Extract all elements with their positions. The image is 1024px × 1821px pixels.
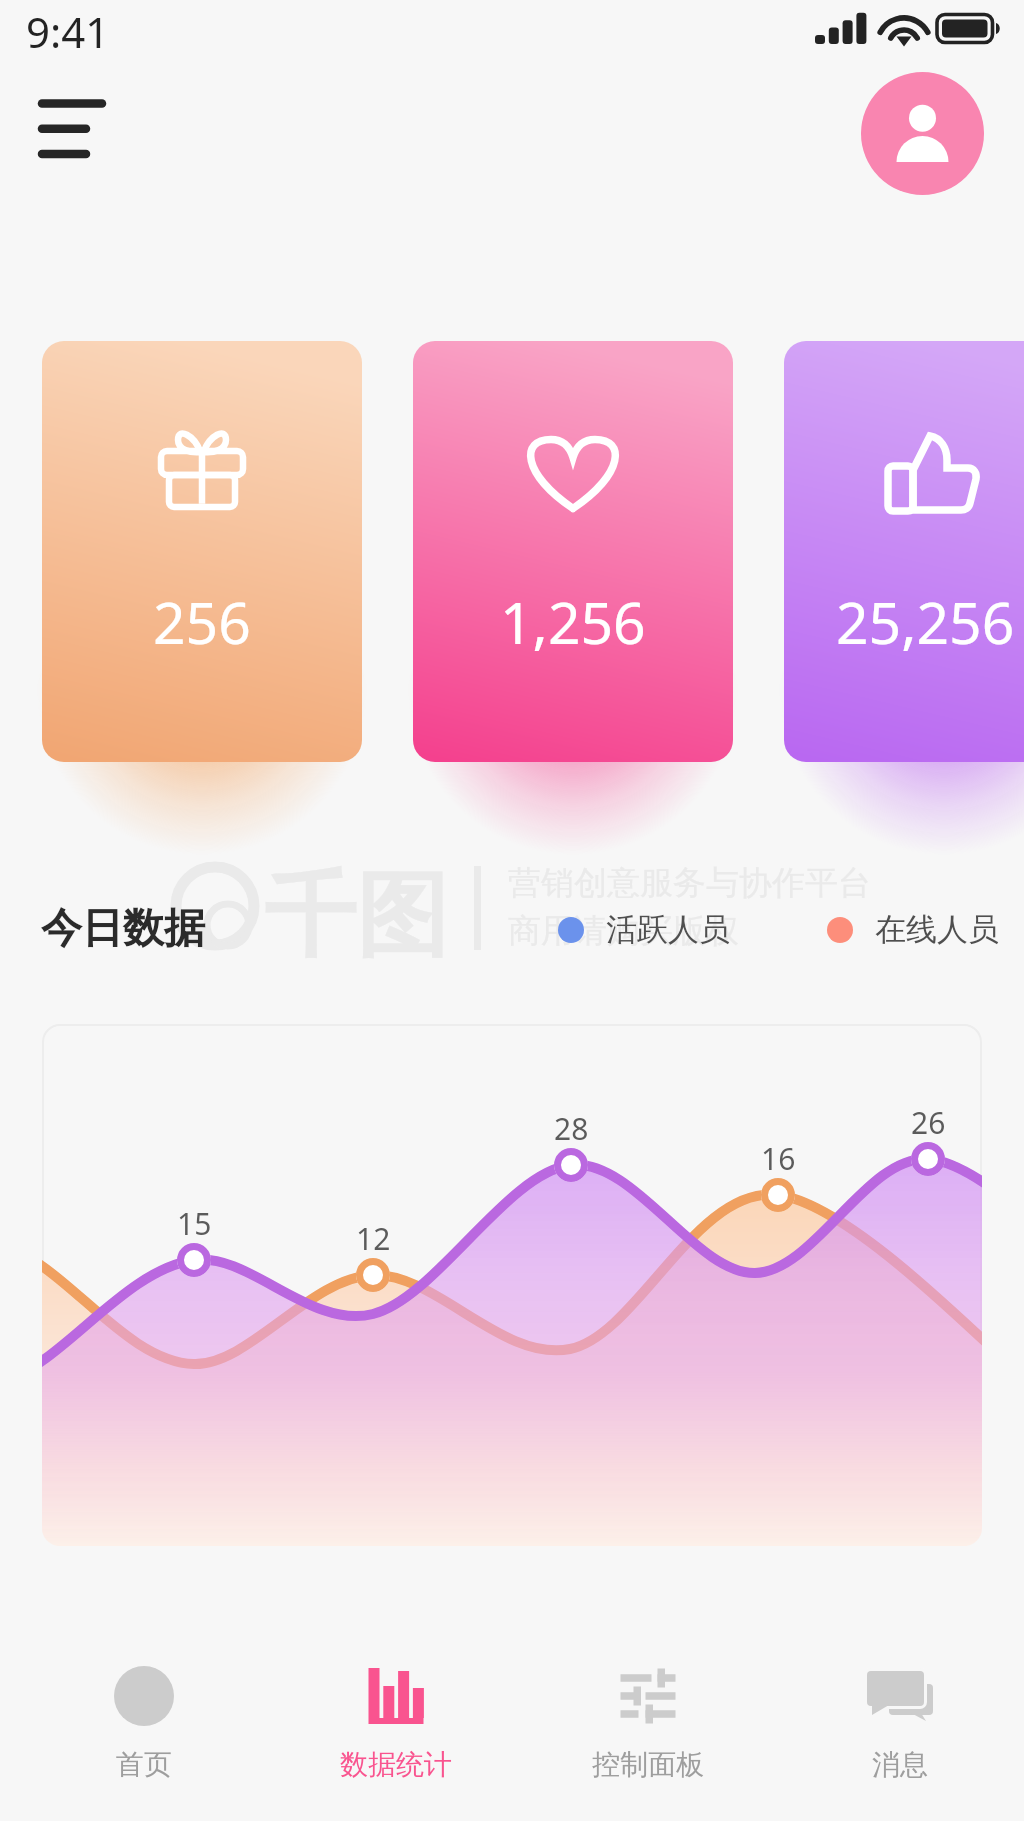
button[interactable]: 控制面板 (522, 1601, 774, 1821)
staticText: 控制面板 (592, 1747, 704, 1782)
staticText: 28 (554, 1108, 589, 1149)
staticText: 在线人员 (875, 910, 999, 949)
staticText: 营销创意服务与协作平台 (508, 862, 871, 904)
staticText: 商用请购买版权 (508, 910, 739, 952)
staticText: 25,256 (836, 583, 1015, 661)
staticText: 9:41 (26, 3, 110, 60)
staticText: 千图 (264, 858, 448, 974)
staticText: 256 (153, 583, 251, 661)
button[interactable]: 首页 (18, 1601, 270, 1821)
staticText: 今日数据 (41, 903, 205, 955)
button[interactable]: 1,256 (413, 341, 733, 762)
button[interactable]: 消息 (774, 1601, 1024, 1821)
staticText: 15 (177, 1203, 212, 1244)
staticText: 12 (356, 1218, 391, 1259)
button[interactable]: 256 (42, 341, 362, 762)
staticText: 消息 (872, 1747, 928, 1782)
button[interactable]: Menu (14, 72, 132, 190)
button[interactable]: 数据统计 (270, 1601, 522, 1821)
staticText: 26 (911, 1102, 946, 1143)
staticText: 数据统计 (340, 1747, 452, 1782)
staticText: 首页 (116, 1747, 172, 1782)
staticText: 活跃人员 (606, 910, 730, 949)
button[interactable]: Profile (861, 72, 984, 195)
staticText: 1,256 (500, 583, 646, 661)
staticText: 16 (761, 1138, 796, 1179)
button[interactable]: 25,256 (784, 341, 1024, 762)
